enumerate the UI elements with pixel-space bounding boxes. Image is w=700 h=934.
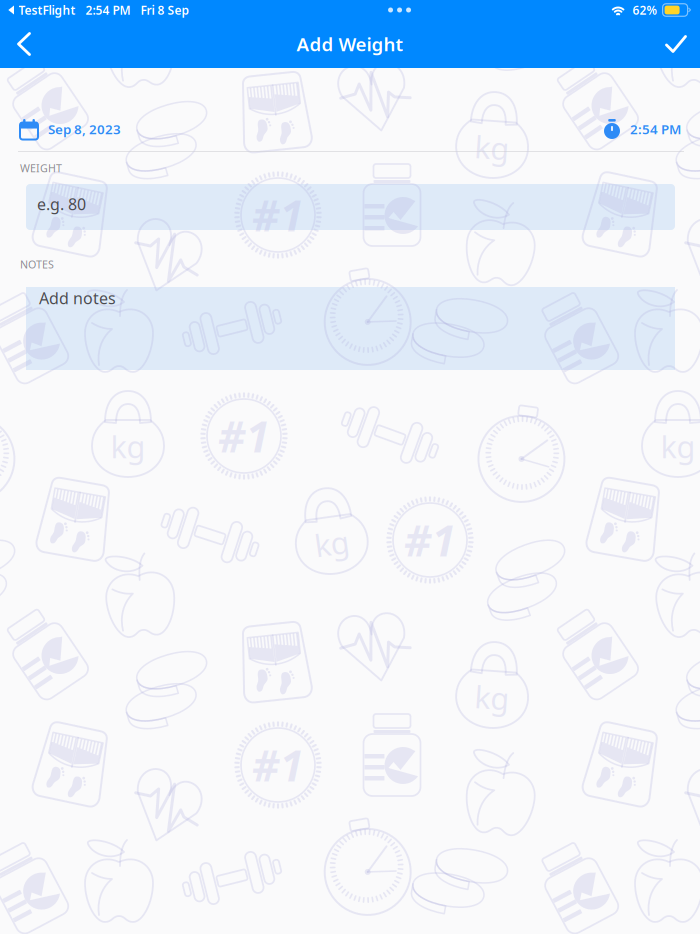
button[interactable]: Back <box>0 20 48 68</box>
staticText: kg <box>660 426 695 467</box>
staticText: NOTES <box>20 257 54 271</box>
button[interactable]: 2:54 PM <box>595 107 700 151</box>
staticText: 62% <box>633 2 658 18</box>
staticText: 2:54 PM <box>85 2 130 18</box>
staticText: #1 <box>404 0 456 18</box>
staticText: #1 <box>252 737 304 793</box>
staticText: Add notes <box>39 287 116 308</box>
staticText: #1 <box>218 408 270 464</box>
staticText: WEIGHT <box>20 161 62 175</box>
staticText: Fri 8 Sep <box>140 2 189 18</box>
button[interactable]: e.g. 80 <box>26 181 675 227</box>
button[interactable]: Sep 8, 2023 <box>0 107 129 151</box>
staticText: e.g. 80 <box>37 193 86 215</box>
staticText: kg <box>475 127 510 168</box>
staticText: Add Weight <box>296 32 403 56</box>
button[interactable]: Save <box>652 20 700 68</box>
staticText: #1 <box>404 512 456 568</box>
staticText: kg <box>475 677 510 718</box>
button[interactable]: Add notes <box>26 278 675 361</box>
staticText: #1 <box>252 187 304 243</box>
staticText: Sep 8, 2023 <box>48 120 121 138</box>
staticText: kg <box>110 426 145 467</box>
staticText: kg <box>312 523 347 564</box>
staticText: 2:54 PM <box>630 120 681 138</box>
staticText: TestFlight <box>18 2 75 18</box>
